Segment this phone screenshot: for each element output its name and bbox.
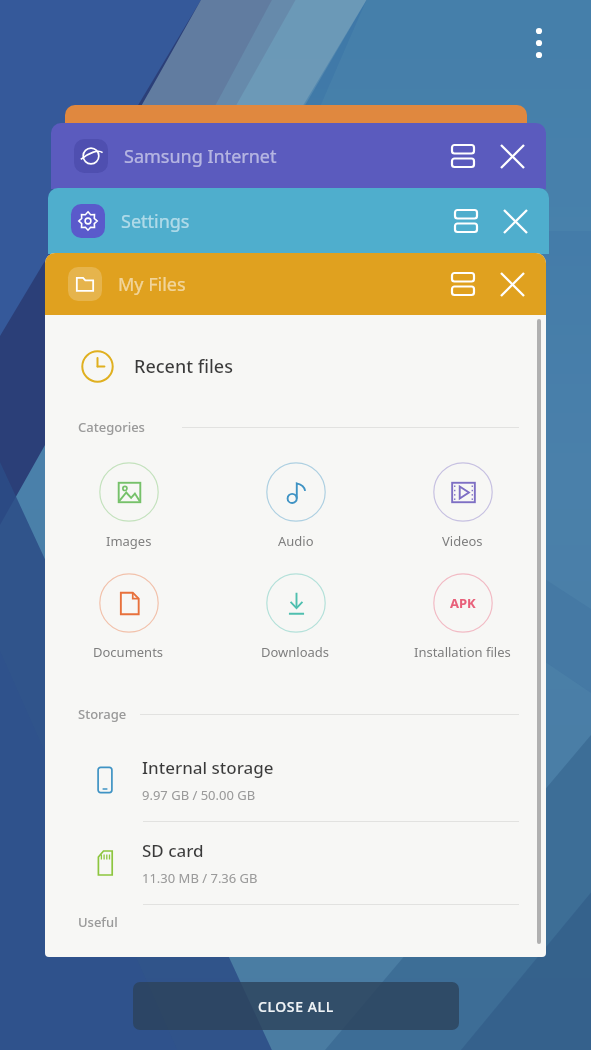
staticText: Downloads [261,643,330,661]
staticText: CLOSE ALL [258,997,334,1016]
button[interactable]: More options [518,22,560,64]
button[interactable]: Open in split screen view [443,198,489,244]
button[interactable]: Audio [212,462,379,550]
staticText: APK [450,594,476,612]
staticText: Settings [121,209,190,234]
button[interactable]: Close [488,132,536,180]
staticText: Categories [78,418,145,436]
button[interactable]: Recent files [45,338,546,394]
button[interactable]: Close [491,197,539,245]
staticText: Storage [78,705,127,723]
button[interactable]: CLOSE ALL [133,982,459,1030]
button[interactable]: Documents [45,573,212,661]
button[interactable]: Internal storage [45,739,546,821]
staticText: 9.97 GB / 50.00 GB [142,786,256,804]
button[interactable]: Close [488,260,536,308]
staticText: Samsung Internet [124,144,277,169]
staticText: 11.30 MB / 7.36 GB [142,869,258,887]
button[interactable]: Videos [379,462,546,550]
staticText: Recent files [134,354,233,379]
staticText: My Files [118,272,186,297]
button[interactable]: My Files [45,253,546,315]
staticText: Audio [278,532,314,550]
button[interactable] [65,105,527,135]
staticText: Documents [93,643,164,661]
button[interactable]: Images [45,462,212,550]
staticText: SD card [142,839,204,862]
button[interactable]: Downloads [212,573,379,661]
button[interactable]: SD card [45,822,546,904]
staticText: Installation files [414,643,511,661]
button[interactable]: Open in split screen view [440,261,486,307]
button[interactable]: APK [379,573,546,661]
button[interactable]: Samsung Internet [51,123,546,189]
staticText: Internal storage [142,756,274,779]
button[interactable]: Settings [48,188,549,254]
staticText: Useful [78,913,118,931]
staticText: Images [106,532,152,550]
staticText: Videos [442,532,483,550]
button[interactable]: Open in split screen view [440,133,486,179]
